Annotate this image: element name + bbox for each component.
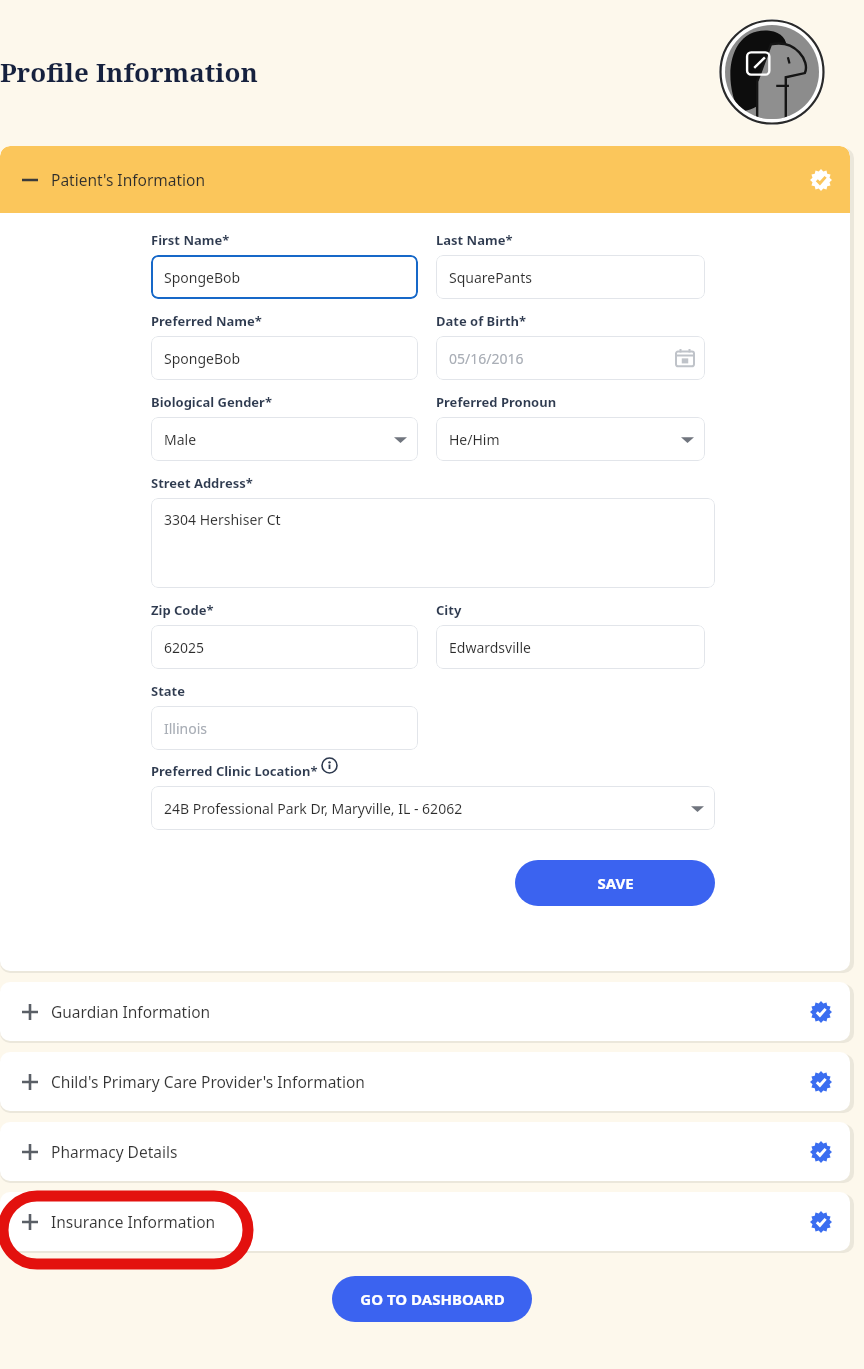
staticText: Illinois: [164, 719, 208, 738]
button[interactable]: Patient's Information: [0, 146, 850, 213]
staticText: 24B Professional Park Dr, Maryville, IL …: [164, 799, 463, 818]
button[interactable]: 62025: [151, 625, 418, 669]
button[interactable]: SquarePants: [436, 255, 705, 299]
staticText: Zip Code*: [151, 601, 214, 619]
staticText: First Name*: [151, 231, 230, 249]
button[interactable]: 3304 Hershiser Ct: [151, 498, 715, 588]
button[interactable]: Child's Primary Care Provider's Informat…: [0, 1052, 850, 1111]
button[interactable]: Insurance Information: [0, 1192, 850, 1251]
staticText: Profile Information: [0, 54, 258, 89]
staticText: State: [151, 682, 185, 700]
staticText: Last Name*: [436, 231, 513, 249]
button[interactable]: Edit profile photo: [719, 19, 825, 125]
staticText: City: [436, 601, 462, 619]
staticText: Biological Gender*: [151, 393, 272, 411]
staticText: Insurance Information: [51, 1211, 216, 1232]
button[interactable]: SpongeBob: [151, 336, 418, 380]
button[interactable]: Clinic location info: [321, 757, 338, 774]
staticText: Preferred Pronoun: [436, 393, 557, 411]
staticText: Patient's Information: [51, 169, 206, 190]
button[interactable]: 24B Professional Park Dr, Maryville, IL …: [151, 786, 715, 830]
staticText: Preferred Name*: [151, 312, 262, 330]
staticText: Date of Birth*: [436, 312, 527, 330]
button[interactable]: He/Him: [436, 417, 705, 461]
staticText: Edwardsville: [449, 638, 531, 657]
staticText: SAVE: [597, 873, 634, 893]
button[interactable]: 05/16/2016: [436, 336, 705, 380]
staticText: Child's Primary Care Provider's Informat…: [51, 1071, 365, 1092]
staticText: SpongeBob: [164, 349, 241, 368]
staticText: SpongeBob: [164, 268, 241, 287]
staticText: Guardian Information: [51, 1001, 211, 1022]
staticText: Male: [164, 430, 197, 449]
staticText: SquarePants: [449, 268, 532, 287]
staticText: GO TO DASHBOARD: [360, 1289, 505, 1309]
staticText: Pharmacy Details: [51, 1141, 178, 1162]
button[interactable]: GO TO DASHBOARD: [332, 1276, 532, 1322]
staticText: 62025: [164, 638, 205, 657]
staticText: Preferred Clinic Location*: [151, 762, 318, 780]
staticText: He/Him: [449, 430, 500, 449]
button[interactable]: Male: [151, 417, 418, 461]
staticText: 05/16/2016: [449, 349, 524, 368]
button[interactable]: Illinois: [151, 706, 418, 750]
staticText: 3304 Hershiser Ct: [164, 510, 281, 529]
button[interactable]: SAVE: [515, 860, 715, 906]
button[interactable]: SpongeBob: [151, 255, 418, 299]
staticText: Street Address*: [151, 474, 253, 492]
button[interactable]: Edwardsville: [436, 625, 705, 669]
button[interactable]: Pharmacy Details: [0, 1122, 850, 1181]
button[interactable]: Guardian Information: [0, 982, 850, 1041]
